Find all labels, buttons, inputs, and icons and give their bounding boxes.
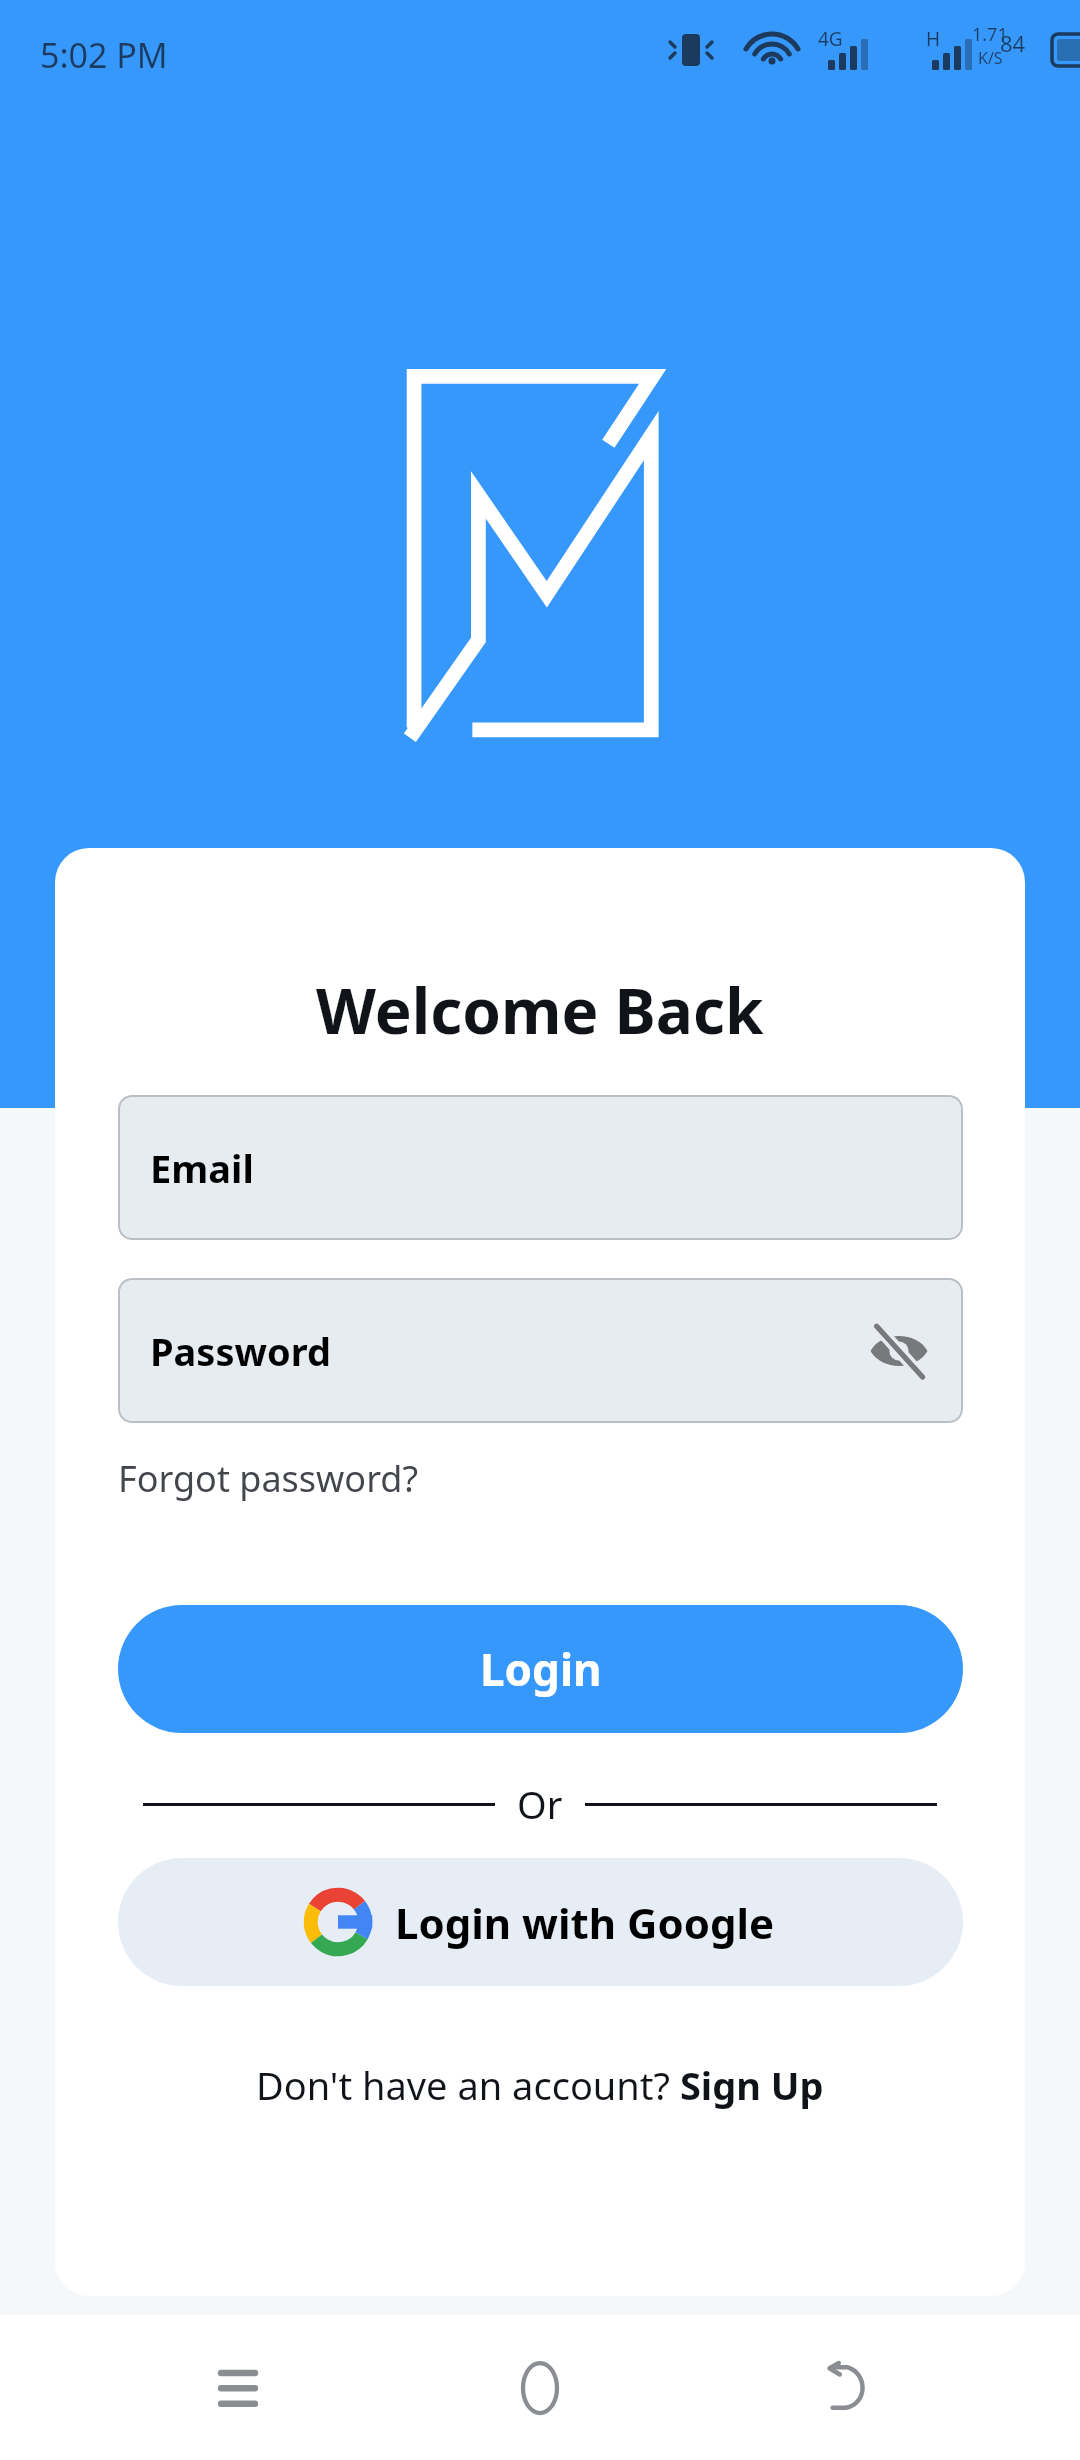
staticText: 5:02 PM — [40, 32, 168, 78]
button[interactable]: Don't have an account? Sign Up — [246, 2053, 834, 2117]
staticText: Or — [517, 1778, 563, 1830]
staticText: Welcome Back — [316, 968, 764, 1052]
button[interactable]: Forgot password? — [118, 1448, 419, 1509]
button[interactable]: Home — [475, 2323, 605, 2453]
button[interactable]: Login — [118, 1605, 963, 1733]
staticText: Forgot password? — [118, 1454, 419, 1503]
button[interactable]: Email — [118, 1095, 963, 1240]
staticText: Don't have an account? Sign Up — [256, 2059, 824, 2111]
button[interactable]: Login with Google — [118, 1858, 963, 1986]
staticText: Password — [150, 1325, 332, 1377]
button[interactable]: Back — [778, 2323, 908, 2453]
staticText: Login — [480, 1639, 602, 1699]
button[interactable]: Recent apps — [173, 2323, 303, 2453]
staticText: K/S — [978, 47, 1003, 69]
button[interactable]: Password — [118, 1278, 963, 1423]
staticText: 1.71 — [972, 22, 1008, 47]
staticText: Login with Google — [395, 1894, 775, 1951]
staticText: Email — [150, 1142, 254, 1194]
staticText: 84 — [1000, 28, 1026, 58]
staticText: 4G — [818, 26, 843, 52]
staticText: H — [926, 26, 941, 52]
button[interactable]: Show password — [859, 1311, 939, 1391]
